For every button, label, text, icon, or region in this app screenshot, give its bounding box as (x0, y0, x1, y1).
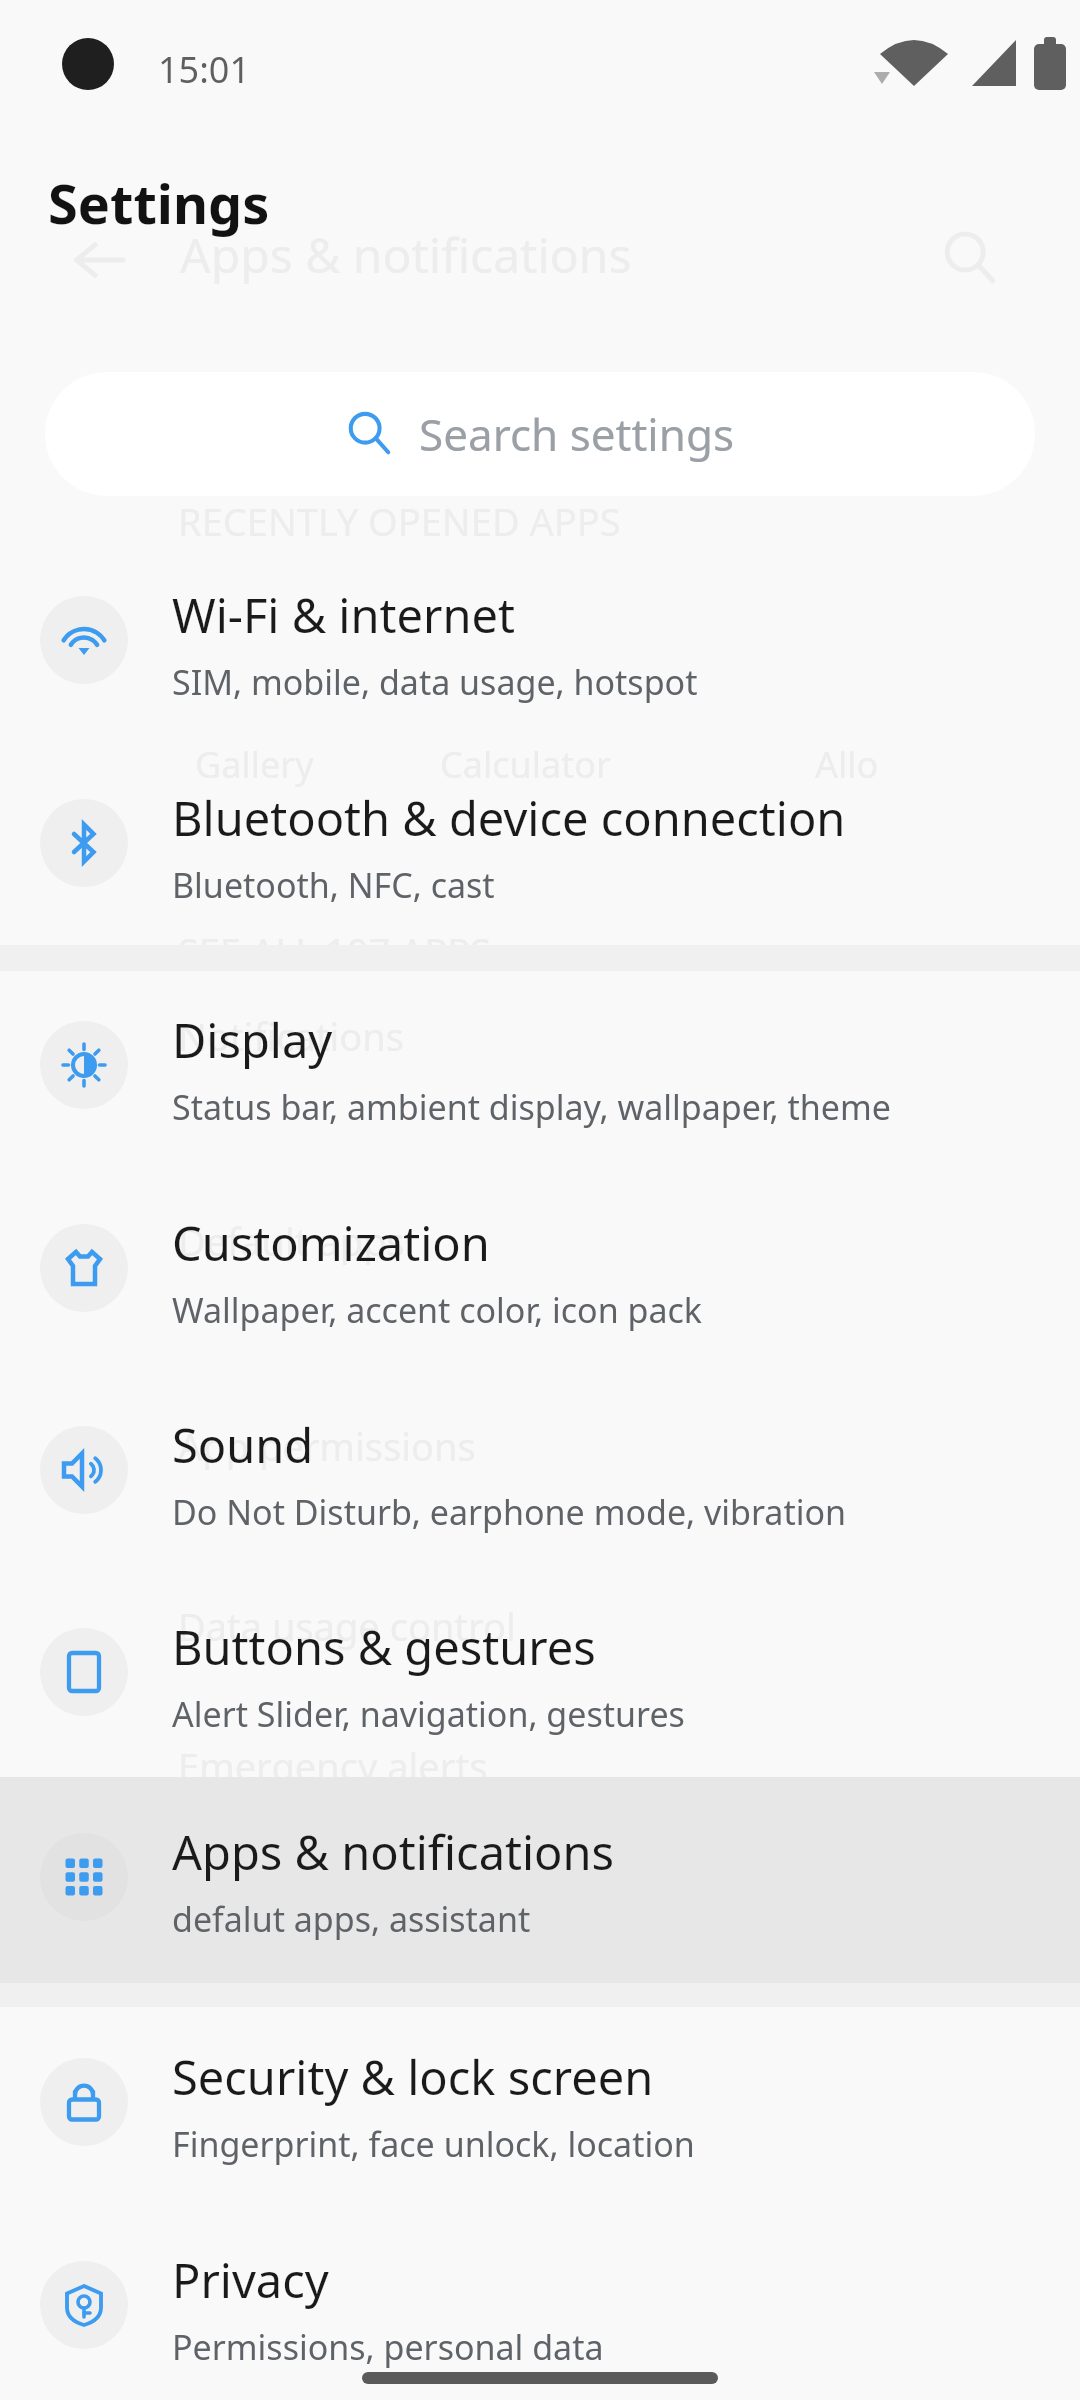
staticText: Bluetooth, NFC, cast (172, 862, 495, 908)
button[interactable]: Display (0, 964, 1080, 1166)
staticText: 15:01 (158, 45, 251, 94)
staticText: Wallpaper, accent color, icon pack (172, 1287, 702, 1333)
button[interactable]: Bluetooth & device connection (0, 742, 1080, 944)
staticText: Search settings (419, 404, 735, 464)
staticText: Security & lock screen (172, 2045, 654, 2109)
staticText: Alert Slider, navigation, gestures (172, 1691, 685, 1737)
button[interactable]: Search settings (45, 372, 1035, 496)
staticText: RECENTLY OPENED APPS (178, 495, 621, 547)
staticText: Apps & notifications (180, 222, 632, 287)
staticText: Sound (172, 1413, 314, 1477)
staticText: Data usage control (178, 1600, 516, 1652)
staticText: App permissions (178, 1420, 476, 1472)
staticText: Special app access (178, 1880, 507, 1932)
staticText: Gallery (195, 740, 314, 789)
button[interactable]: Privacy (0, 2204, 1080, 2400)
staticText: Emergency alerts (178, 1740, 488, 1792)
staticText: Fingerprint, face unlock, location (172, 2121, 695, 2167)
staticText: Wi-Fi & internet (172, 583, 515, 647)
staticText: SIM, mobile, data usage, hotspot (172, 659, 698, 705)
staticText: Calculator (440, 740, 611, 789)
staticText: SEE ALL 107 APPS (178, 925, 492, 977)
button[interactable]: Customization (0, 1167, 1080, 1369)
staticText: defalut apps, assistant (172, 1896, 531, 1942)
staticText: Notifications (178, 1010, 405, 1062)
staticText: Settings (48, 166, 270, 240)
staticText: Buttons & gestures (172, 1615, 596, 1679)
staticText: Customization (172, 1211, 490, 1275)
button[interactable]: Sound (0, 1369, 1080, 1571)
button[interactable]: Wi-Fi & internet (0, 539, 1080, 741)
staticText: Do Not Disturb, earphone mode, vibration (172, 1489, 847, 1535)
button[interactable]: Buttons & gestures (0, 1571, 1080, 1773)
staticText: Status bar, ambient display, wallpaper, … (172, 1084, 891, 1130)
button[interactable]: Apps & notifications (0, 1776, 1080, 1978)
staticText: Bluetooth & device connection (172, 786, 846, 850)
staticText: Privacy (172, 2248, 329, 2312)
staticText: Permissions, personal data (172, 2324, 604, 2370)
button[interactable]: Security & lock screen (0, 2001, 1080, 2203)
staticText: Allo (815, 740, 879, 789)
staticText: Apps & notifications (172, 1820, 615, 1884)
staticText: Default apps (178, 1215, 405, 1267)
staticText: Display (172, 1008, 333, 1072)
